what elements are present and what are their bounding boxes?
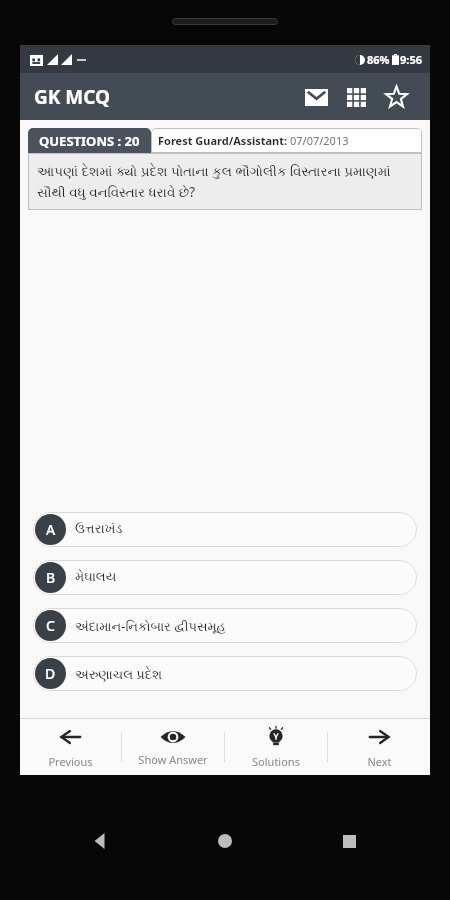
- button[interactable]: Back: [78, 820, 124, 862]
- staticText: D: [45, 664, 56, 683]
- button[interactable]: Messages: [296, 77, 336, 117]
- button[interactable]: Home: [202, 820, 248, 862]
- button[interactable]: A: [33, 512, 417, 547]
- staticText: Solutions: [252, 754, 300, 769]
- button[interactable]: Show Answer: [122, 719, 224, 775]
- staticText: અંદામાન-નિકોબાર દ્વીપસમૂહ: [75, 617, 226, 635]
- button[interactable]: Forest Guard/Assistant: 07/07/2013: [158, 128, 422, 153]
- button[interactable]: Solutions: [225, 719, 327, 775]
- staticText: 86%: [367, 52, 390, 67]
- staticText: A: [46, 520, 56, 539]
- staticText: ઉત્તરાખંડ: [75, 523, 123, 536]
- button[interactable]: All categories: [336, 77, 376, 117]
- button[interactable]: D: [33, 656, 417, 691]
- staticText: આપણાં દેશમાં ક્યો પ્રદેશ પોતાના કુલ ભૌગો…: [37, 162, 413, 201]
- staticText: C: [46, 616, 55, 635]
- staticText: Previous: [48, 754, 93, 769]
- staticText: મેઘાલય: [75, 571, 117, 584]
- staticText: Show Answer: [138, 752, 208, 767]
- button[interactable]: Previous: [20, 719, 121, 775]
- staticText: B: [46, 568, 56, 587]
- staticText: 9:56: [400, 52, 422, 67]
- button[interactable]: B: [33, 560, 417, 595]
- staticText: અરુણાચલ પ્રદેશ: [75, 665, 163, 683]
- button[interactable]: Recent apps: [326, 820, 372, 862]
- button[interactable]: QUESTIONS : 20: [39, 128, 140, 153]
- staticText: Forest Guard/Assistant: 07/07/2013: [158, 133, 349, 148]
- button[interactable]: C: [33, 608, 417, 643]
- staticText: Next: [367, 754, 392, 769]
- button[interactable]: Favourites: [376, 77, 416, 117]
- button[interactable]: Next: [328, 719, 430, 775]
- staticText: QUESTIONS : 20: [39, 132, 140, 150]
- staticText: GK MCQ: [34, 84, 111, 110]
